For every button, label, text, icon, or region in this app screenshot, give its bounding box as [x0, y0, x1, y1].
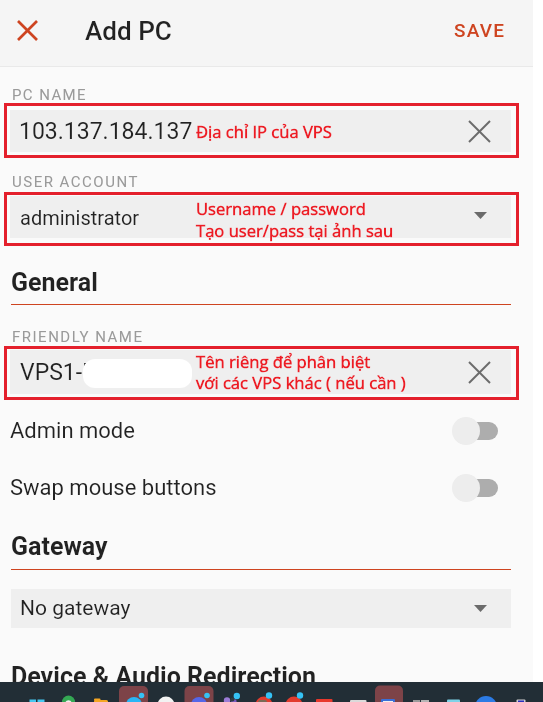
staticText: PC NAME — [12, 86, 87, 104]
button[interactable]: SAVE — [440, 6, 520, 54]
staticText: No gateway — [20, 596, 131, 621]
button[interactable]: Close — [0, 2, 55, 58]
staticText: Swap mouse buttons — [10, 475, 217, 501]
staticText: Add PC — [85, 16, 172, 46]
staticText: Device & Audio Redirection — [11, 662, 316, 691]
staticText: FRIENDLY NAME — [12, 328, 144, 346]
staticText: 103.137.184.137 — [19, 118, 193, 145]
button[interactable]: Select user account — [460, 195, 500, 235]
button[interactable]: 103.137.184.137 — [10, 110, 511, 152]
button[interactable]: administrator — [10, 196, 511, 238]
button[interactable]: Clear PC name — [459, 111, 500, 152]
staticText: General — [11, 268, 98, 297]
button[interactable]: Admin mode — [0, 409, 533, 453]
button[interactable]: Clear friendly name — [459, 352, 499, 392]
staticText: VPS1-I — [20, 359, 89, 386]
staticText: administrator — [20, 206, 140, 229]
staticText: Tạo user/pass tại ảnh sau — [196, 219, 394, 242]
staticText: Tên riêng để phân biệt — [196, 350, 371, 373]
staticText: Admin mode — [10, 418, 135, 444]
staticText: SAVE — [454, 19, 506, 41]
staticText: với các VPS khác ( nếu cần ) — [196, 371, 406, 394]
staticText: Địa chỉ IP của VPS — [196, 120, 332, 143]
button[interactable]: Swap mouse buttons — [0, 466, 533, 510]
button[interactable]: No gateway — [11, 589, 511, 628]
staticText: USER ACCOUNT — [12, 173, 139, 191]
staticText: Username / password — [196, 197, 366, 220]
staticText: Gateway — [11, 532, 108, 561]
button[interactable]: VPS1-I — [10, 350, 511, 394]
